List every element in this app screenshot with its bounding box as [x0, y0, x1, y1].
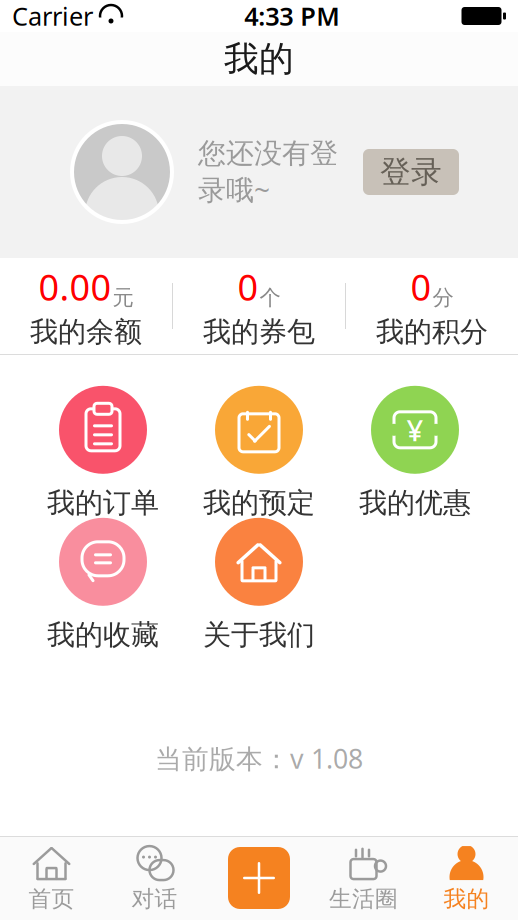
- staticText: 对话: [131, 885, 177, 913]
- button[interactable]: 关于我们: [181, 519, 337, 651]
- button[interactable]: 我的收藏: [25, 519, 181, 651]
- staticText: 我的: [443, 885, 489, 913]
- button[interactable]: 我的预定: [181, 387, 337, 519]
- staticText: 关于我们: [203, 618, 315, 652]
- staticText: 我的余额: [30, 315, 142, 349]
- staticText: 当前版本：v 1.08: [155, 741, 363, 776]
- button[interactable]: ¥: [337, 387, 493, 519]
- staticText: 分: [432, 284, 453, 311]
- staticText: 我的订单: [47, 486, 159, 520]
- staticText: 我的收藏: [47, 618, 159, 652]
- staticText: ¥: [406, 410, 423, 449]
- staticText: Carrier: [12, 0, 93, 33]
- button[interactable]: 首页: [0, 836, 103, 920]
- staticText: 4:33 PM: [244, 0, 340, 33]
- button[interactable]: 登录: [363, 149, 459, 195]
- staticText: 我的积分: [376, 315, 488, 349]
- staticText: 0.00: [38, 263, 111, 311]
- button[interactable]: 生活圈: [312, 836, 415, 920]
- button[interactable]: 对话: [103, 836, 206, 920]
- staticText: 我的优惠: [359, 486, 471, 520]
- staticText: 您还没有登录哦~: [198, 136, 338, 208]
- staticText: 登录: [380, 153, 442, 191]
- button[interactable]: 0.00: [0, 258, 172, 354]
- staticText: 个: [259, 284, 280, 311]
- button[interactable]: 0: [173, 258, 345, 354]
- button[interactable]: 我的订单: [25, 387, 181, 519]
- button[interactable]: 新建: [206, 836, 312, 920]
- staticText: 首页: [28, 885, 74, 913]
- staticText: 我的券包: [203, 315, 315, 349]
- button[interactable]: 我的: [415, 836, 518, 920]
- staticText: 元: [112, 284, 133, 311]
- staticText: 生活圈: [329, 885, 398, 913]
- staticText: 我的预定: [203, 486, 315, 520]
- staticText: 0: [237, 263, 258, 311]
- button[interactable]: 0: [346, 258, 518, 354]
- staticText: 我的: [224, 38, 294, 80]
- staticText: 0: [410, 263, 431, 311]
